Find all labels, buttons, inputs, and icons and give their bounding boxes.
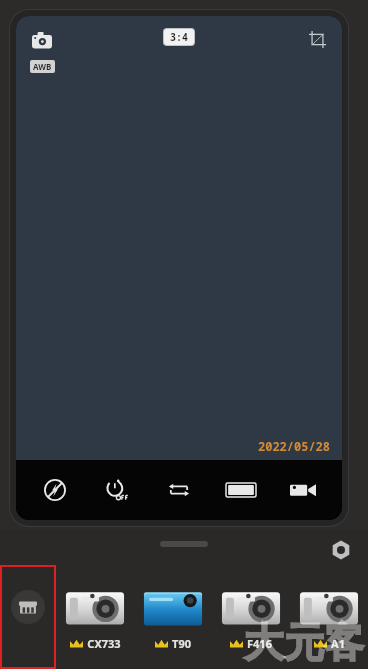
button[interactable]: Menu [218,467,264,513]
button[interactable]: AWB [33,61,52,72]
button[interactable]: Settings [324,533,358,567]
staticText: AWB [33,61,52,72]
staticText: 3:4 [170,30,188,44]
button[interactable]: CX733 [56,565,134,669]
button[interactable]: Switch [156,467,202,513]
button[interactable]: 3:4 [170,30,188,44]
staticText: T90 [172,636,191,651]
button[interactable]: Crop [306,28,328,50]
button[interactable]: Video [280,467,326,513]
button[interactable]: T90 [134,565,212,669]
button[interactable]: A1 [290,565,368,669]
button[interactable]: Timer off [94,467,140,513]
staticText: A1 [331,636,345,651]
staticText: 大元客 [244,617,364,667]
staticText: CX733 [87,636,121,651]
button[interactable]: F416 [212,565,290,669]
button[interactable]: Shooting mode [30,28,54,52]
staticText: 2022/05/28 [258,438,331,454]
staticText: F416 [247,636,272,651]
button[interactable]: Flash off [32,467,78,513]
button[interactable]: Camera store [0,565,56,669]
